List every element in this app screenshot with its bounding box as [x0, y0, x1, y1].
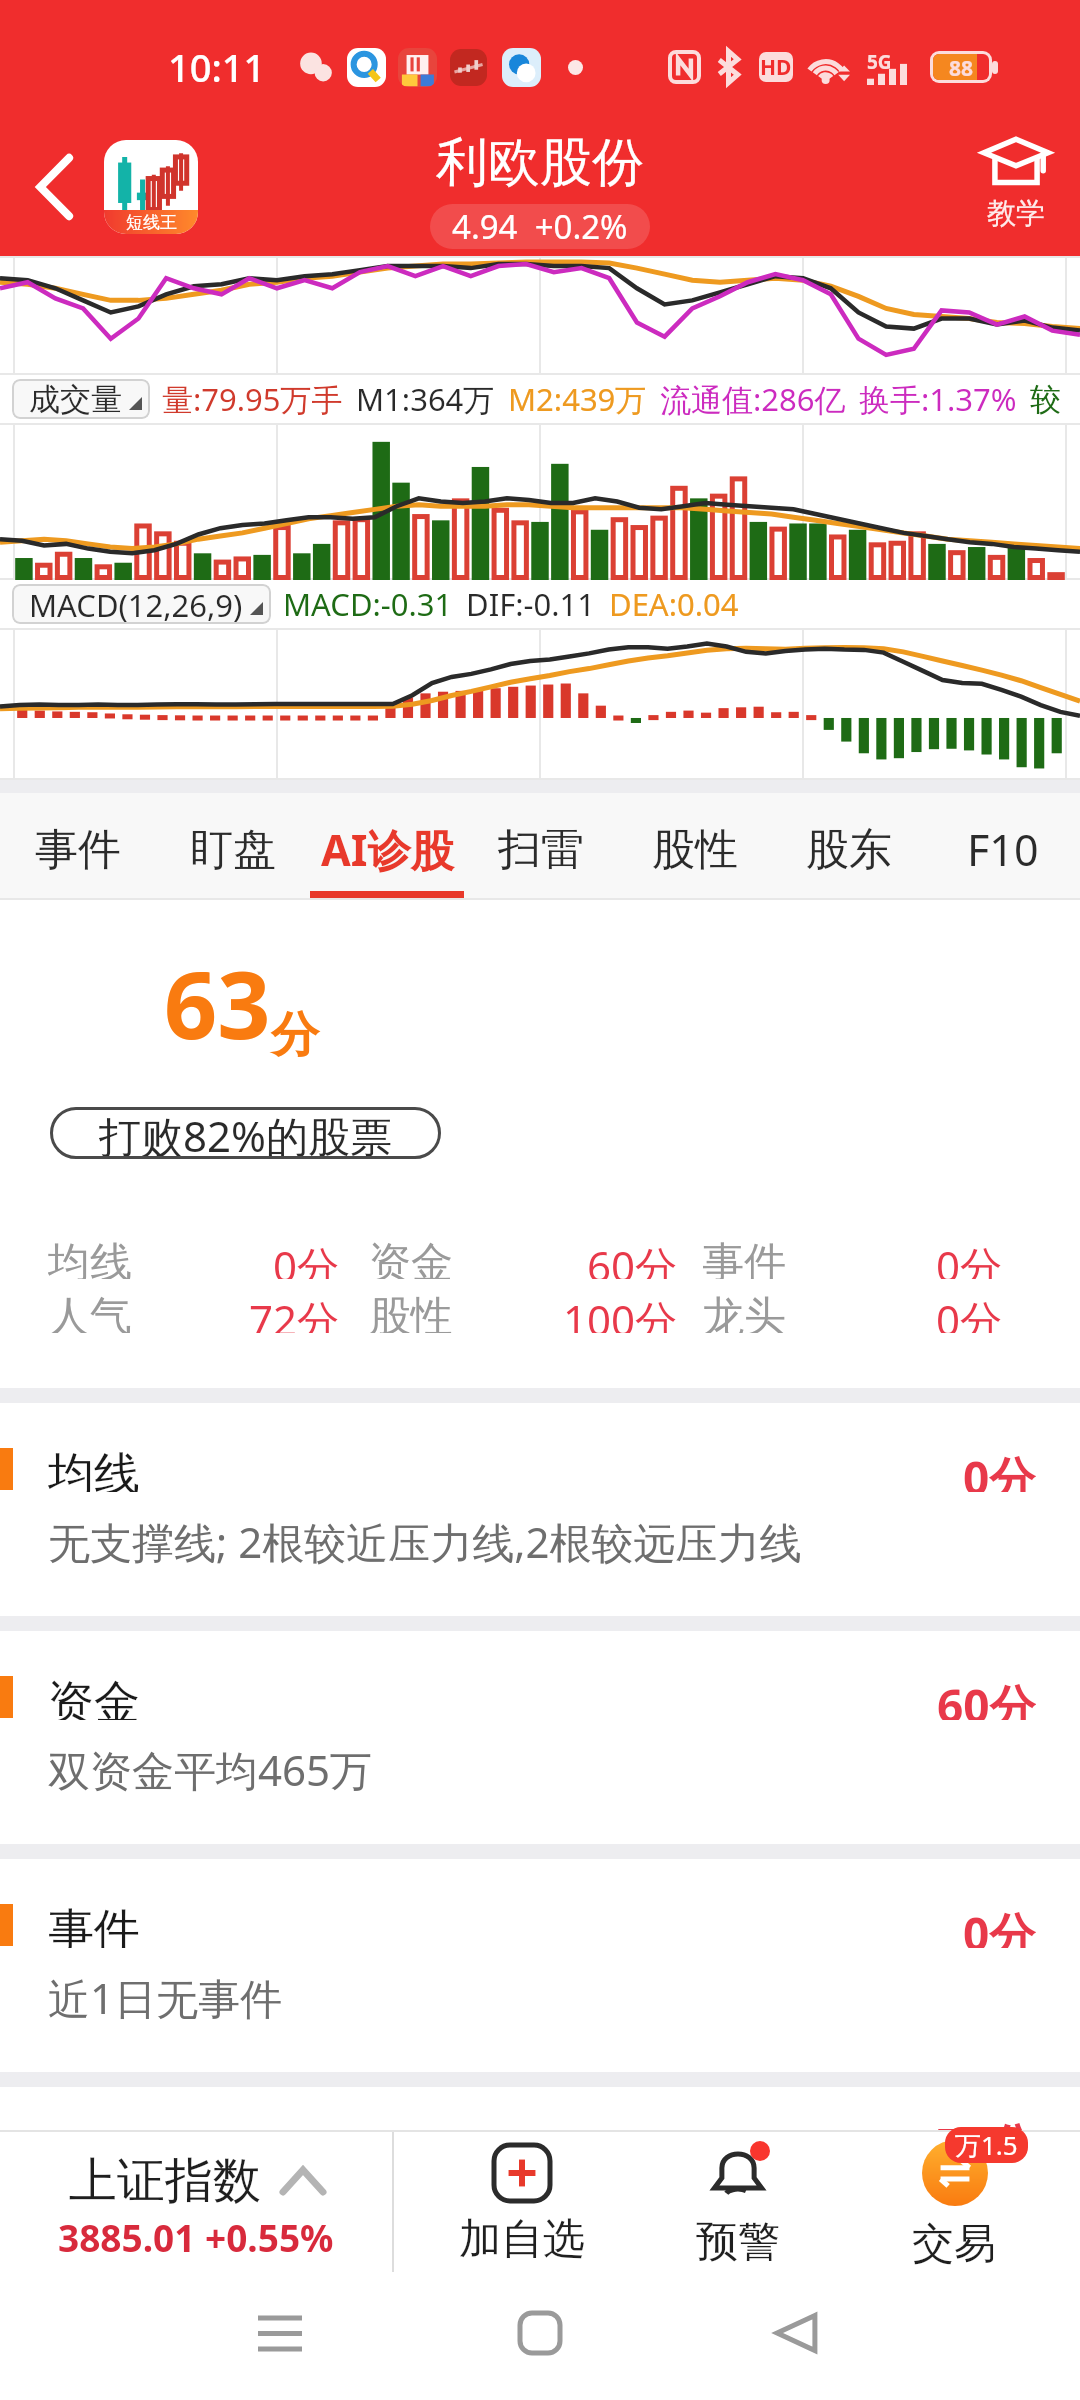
staticText: 3885.01 +0.55% [58, 2212, 334, 2262]
button[interactable]: 扫雷 [464, 793, 618, 898]
staticText: 股性 [652, 823, 738, 877]
staticText: 股性 [369, 1291, 453, 1333]
staticText: MACD:-0.31 [283, 583, 453, 625]
staticText: DEA:0.04 [609, 583, 739, 625]
staticText: 利欧股份 [436, 130, 644, 196]
staticText: 教学 [987, 195, 1045, 232]
button[interactable]: 股东 [772, 793, 926, 898]
button[interactable]: Home [492, 2285, 588, 2381]
staticText: 72分 [249, 1291, 340, 1333]
staticText: 换手:1.37% [859, 378, 1017, 420]
button[interactable]: AI诊股 [310, 793, 464, 898]
button[interactable]: Back [0, 118, 108, 256]
button[interactable]: Back [748, 2285, 844, 2381]
button[interactable]: App icon [104, 140, 198, 234]
button[interactable]: 事件 [0, 1859, 1080, 2072]
staticText: 分 [271, 1005, 319, 1065]
staticText: 4.94 +0.2% [452, 204, 628, 249]
button[interactable]: 资金 [0, 1631, 1080, 1844]
staticText: 量:79.95万手 [162, 378, 343, 420]
button[interactable]: 盯盘 [155, 793, 310, 898]
button[interactable]: 万1.5 [846, 2135, 1062, 2275]
staticText: 10:11 [168, 41, 266, 93]
button[interactable]: 打败82%的股票 [50, 1107, 441, 1159]
staticText: 均线 [48, 1446, 140, 1492]
staticText: 事件 [702, 1237, 786, 1279]
button[interactable]: 上证指数 [0, 2136, 392, 2276]
button[interactable]: 教学 [982, 135, 1050, 232]
staticText: M2:439万 [508, 378, 647, 420]
staticText: 60分 [937, 1674, 1036, 1720]
staticText: 交易 [912, 2218, 996, 2271]
staticText: 双资金平均465万 [48, 1741, 373, 1798]
staticText: 63 [164, 940, 271, 1067]
staticText: 事件 [35, 823, 121, 877]
staticText: 较昨 [1030, 380, 1080, 419]
staticText: 流通值:286亿 [660, 378, 846, 420]
staticText: 0分 [936, 1237, 1003, 1279]
staticText: 万1.5 [955, 2127, 1018, 2163]
staticText: 0分 [273, 1237, 340, 1279]
staticText: 事件 [48, 1902, 140, 1948]
staticText: 近1日无事件 [48, 1969, 283, 2026]
staticText: 资金 [369, 1237, 453, 1279]
staticText: 0分 [936, 1291, 1003, 1333]
button[interactable]: 预警 [630, 2135, 846, 2275]
button[interactable]: Recent apps [232, 2285, 328, 2381]
button[interactable]: MACD(12,26,9) [29, 584, 263, 624]
button[interactable]: F10 [926, 793, 1080, 898]
staticText: 预警 [696, 2216, 780, 2269]
button[interactable]: 事件 [0, 793, 155, 898]
staticText: 无支撑线; 2根较近压力线,2根较远压力线 [48, 1513, 802, 1570]
staticText: 加自选 [459, 2213, 585, 2266]
staticText: 0分 [963, 1902, 1036, 1948]
staticText: 88 [949, 54, 974, 80]
staticText: 成交量 [29, 380, 122, 419]
staticText: 5G [867, 49, 892, 75]
staticText: DIF:-0.11 [466, 583, 596, 625]
staticText: M1:364万 [356, 378, 495, 420]
staticText: 盯盘 [190, 823, 276, 877]
staticText: 扫雷 [498, 823, 584, 877]
staticText: 60分 [587, 1237, 678, 1279]
button[interactable]: 股性 [618, 793, 772, 898]
staticText: 人气 [48, 1291, 132, 1333]
staticText: 0分 [963, 1446, 1036, 1492]
button[interactable]: 均线 [0, 1403, 1080, 1616]
staticText: 100分 [563, 1291, 678, 1333]
staticText: MACD(12,26,9) [29, 584, 243, 624]
staticText: 均线 [48, 1237, 132, 1279]
button[interactable]: 成交量 [29, 379, 142, 419]
staticText: 股东 [806, 823, 892, 877]
staticText: 打败82%的股票 [99, 1107, 392, 1159]
staticText: 短线王 [126, 212, 177, 233]
staticText: 龙头 [702, 1291, 786, 1333]
staticText: F10 [967, 820, 1039, 879]
button[interactable]: 加自选 [413, 2135, 630, 2275]
button[interactable]: 70分 [0, 2087, 1080, 2300]
staticText: HD [760, 53, 792, 82]
staticText: 70分 [937, 2113, 1036, 2159]
staticText: 上证指数 [69, 2151, 261, 2211]
staticText: 资金 [48, 1674, 140, 1720]
staticText: AI诊股 [321, 820, 454, 879]
